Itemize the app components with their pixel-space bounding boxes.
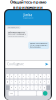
staticText: ч [15, 87, 16, 89]
button[interactable]: з [42, 74, 46, 79]
button[interactable]: щ [38, 74, 42, 79]
staticText: Сегодня, 10:14 [8, 27, 19, 28]
staticText: Общайтесь прямо [10, 0, 46, 4]
button[interactable]: ю [42, 85, 46, 90]
staticText: х [48, 75, 49, 77]
button[interactable]: э [46, 80, 50, 84]
staticText: 123 [10, 92, 13, 94]
staticText: Добрый день! Никак не получается оформит… [8, 32, 26, 37]
staticText: м [23, 87, 24, 89]
staticText: ц [11, 75, 12, 77]
button[interactable]: р [26, 80, 30, 84]
button[interactable]: Shift [46, 85, 51, 90]
staticText: Сообщение [7, 62, 23, 66]
staticText: у [15, 75, 16, 77]
staticText: Jimba [23, 13, 32, 17]
button[interactable]: ж [42, 80, 46, 84]
staticText: ь [36, 87, 37, 89]
staticText: в приложении [13, 4, 43, 10]
button[interactable]: ц [10, 74, 14, 79]
staticText: в [15, 81, 16, 83]
button[interactable]: Send [45, 62, 49, 66]
staticText: щ [40, 75, 41, 77]
button[interactable]: е [22, 74, 26, 79]
button[interactable]: и [26, 85, 30, 90]
button[interactable]: п [22, 80, 26, 84]
staticText: й [7, 75, 8, 77]
staticText: к [19, 75, 20, 77]
button[interactable]: Shift [5, 85, 9, 90]
button[interactable]: ы [10, 80, 14, 84]
staticText: е [23, 75, 24, 77]
button[interactable]: б [38, 85, 42, 90]
button[interactable]: к [18, 74, 22, 79]
staticText: д [40, 81, 41, 83]
button[interactable]: д [38, 80, 42, 84]
button[interactable]: г [30, 74, 34, 79]
staticText: Здравствуйте! Сейчас посмотрим, в чём мо… [30, 43, 48, 48]
staticText: ж [44, 81, 45, 83]
staticText: б [40, 87, 41, 89]
staticText: ф [7, 81, 8, 83]
staticText: я [11, 87, 12, 89]
button[interactable]: с [18, 85, 22, 90]
button[interactable]: н [26, 74, 30, 79]
button[interactable]: а [18, 80, 22, 84]
button[interactable]: ь [34, 85, 38, 90]
staticText: ы [11, 81, 12, 83]
button[interactable]: т [30, 85, 34, 90]
staticText: з [44, 75, 45, 77]
button[interactable]: м [22, 85, 26, 90]
button[interactable]: ш [34, 74, 38, 79]
staticText: ш [36, 75, 37, 77]
button[interactable]: ч [14, 85, 18, 90]
button[interactable]: й [6, 74, 9, 79]
button[interactable]: ф [6, 80, 9, 84]
button[interactable]: я [10, 85, 13, 90]
staticText: был(а) недавно [22, 17, 33, 19]
staticText: п [23, 81, 24, 83]
button[interactable]: л [34, 80, 38, 84]
button[interactable]: в [14, 80, 18, 84]
staticText: а [19, 81, 20, 83]
button[interactable]: у [14, 74, 18, 79]
staticText: ю [44, 87, 45, 89]
button[interactable]: х [46, 74, 50, 79]
staticText: с [19, 87, 20, 89]
button[interactable]: о [30, 80, 34, 84]
